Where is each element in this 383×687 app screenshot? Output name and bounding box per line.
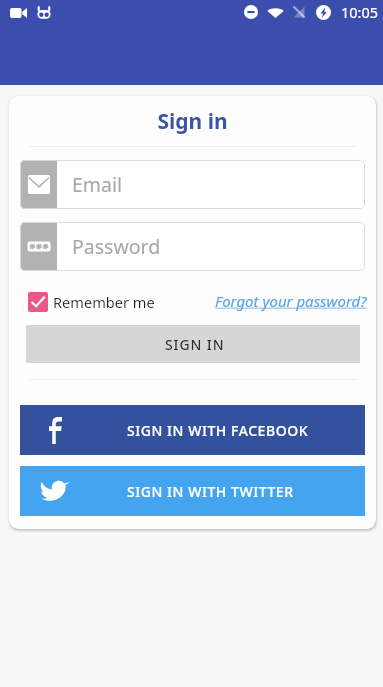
- staticText: Sign in: [20, 107, 365, 136]
- button[interactable]: Forgot your password?: [213, 292, 365, 312]
- staticText: SIGN IN WITH FACEBOOK: [127, 421, 309, 440]
- button[interactable]: Password: [20, 222, 365, 271]
- staticText: Email: [72, 171, 123, 198]
- staticText: Password: [72, 233, 161, 260]
- button[interactable]: Remember me: [20, 292, 161, 312]
- staticText: SIGN IN: [165, 335, 225, 354]
- button[interactable]: SIGN IN: [26, 325, 360, 363]
- staticText: Remember me: [53, 292, 155, 312]
- button[interactable]: Email: [20, 160, 365, 209]
- staticText: 10:05: [341, 2, 379, 22]
- staticText: SIGN IN WITH TWITTER: [127, 482, 294, 501]
- button[interactable]: SIGN IN WITH FACEBOOK: [20, 405, 365, 455]
- button[interactable]: SIGN IN WITH TWITTER: [20, 466, 365, 516]
